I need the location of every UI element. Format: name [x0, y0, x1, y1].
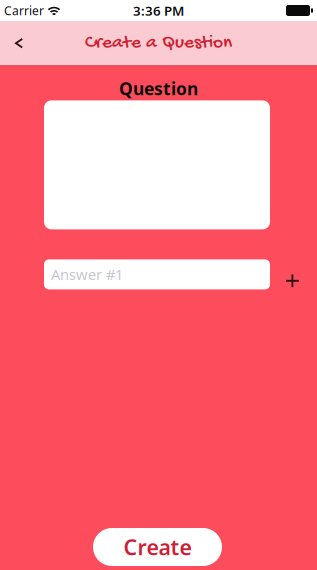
- staticText: Answer #1: [51, 265, 123, 284]
- button[interactable]: Add answer: [270, 259, 315, 289]
- staticText: Create: [123, 533, 191, 561]
- staticText: 3:36 PM: [133, 2, 184, 19]
- button[interactable]: Create: [93, 528, 222, 566]
- staticText: Create a Question: [85, 32, 232, 55]
- button[interactable]: Back: [0, 21, 38, 65]
- staticText: Question: [119, 77, 198, 100]
- staticText: Carrier: [4, 2, 44, 18]
